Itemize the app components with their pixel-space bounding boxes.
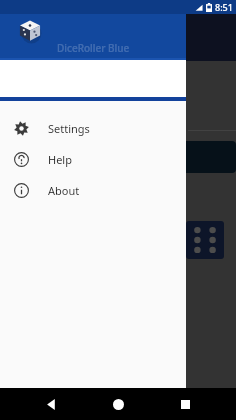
button[interactable]: Settings: [0, 113, 186, 144]
button[interactable]: About: [0, 175, 186, 206]
button[interactable]: Back: [35, 388, 67, 420]
button[interactable]: Recent apps: [169, 388, 201, 420]
staticText: 8:51: [215, 1, 233, 13]
staticText: Settings: [48, 121, 90, 136]
button[interactable]: Help: [0, 144, 186, 175]
button[interactable]: Home: [102, 388, 134, 420]
staticText: About: [48, 183, 80, 198]
staticText: DiceRoller Blue: [57, 41, 130, 55]
staticText: Help: [48, 152, 72, 167]
